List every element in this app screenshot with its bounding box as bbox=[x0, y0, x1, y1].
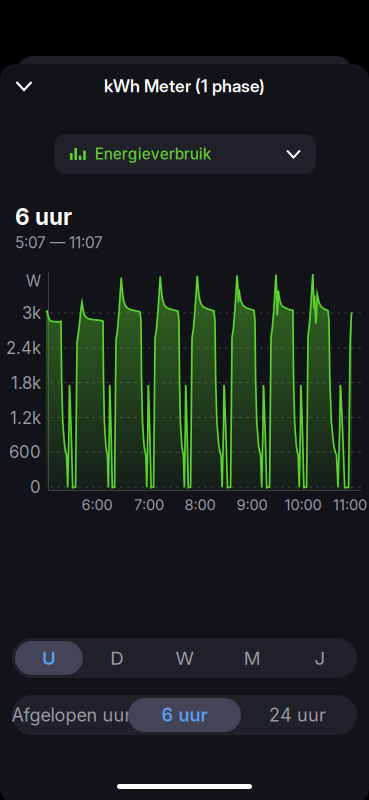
staticText: 1.2k bbox=[10, 408, 41, 428]
staticText: 2.4k bbox=[6, 338, 41, 358]
staticText: J bbox=[315, 647, 326, 669]
staticText: Energieverbruik bbox=[95, 145, 212, 163]
staticText: 7:00 bbox=[134, 496, 164, 514]
staticText: W bbox=[26, 272, 41, 290]
staticText: W bbox=[175, 647, 193, 669]
staticText: 6:00 bbox=[81, 496, 112, 514]
button[interactable]: Afgelopen uur bbox=[15, 698, 128, 732]
button[interactable]: D bbox=[83, 641, 151, 675]
staticText: 6 uur bbox=[161, 704, 207, 726]
staticText: U bbox=[42, 647, 56, 669]
staticText: 600 bbox=[9, 442, 41, 462]
staticText: 11:00 bbox=[333, 496, 367, 514]
staticText: 3k bbox=[22, 303, 41, 323]
staticText: M bbox=[244, 647, 261, 669]
button[interactable]: J bbox=[286, 641, 354, 675]
button[interactable]: Energieverbruik bbox=[54, 134, 316, 174]
staticText: 0 bbox=[30, 477, 41, 497]
staticText: 9:00 bbox=[236, 496, 267, 514]
button[interactable]: U bbox=[15, 641, 83, 675]
staticText: 8:00 bbox=[184, 496, 215, 514]
staticText: Afgelopen uur bbox=[11, 704, 131, 726]
button[interactable]: 24 uur bbox=[241, 698, 354, 732]
staticText: 1.8k bbox=[11, 373, 41, 393]
staticText: 5:07 — 11:07 bbox=[15, 233, 103, 252]
button[interactable]: Collapse bbox=[0, 64, 48, 108]
staticText: 24 uur bbox=[269, 704, 326, 726]
staticText: 6 uur bbox=[15, 203, 72, 230]
button[interactable]: M bbox=[218, 641, 286, 675]
button[interactable]: W bbox=[151, 641, 218, 675]
staticText: 10:00 bbox=[284, 496, 321, 514]
staticText: D bbox=[110, 647, 123, 669]
staticText: kWh Meter (1 phase) bbox=[104, 75, 265, 96]
button[interactable]: 6 uur bbox=[128, 698, 241, 732]
